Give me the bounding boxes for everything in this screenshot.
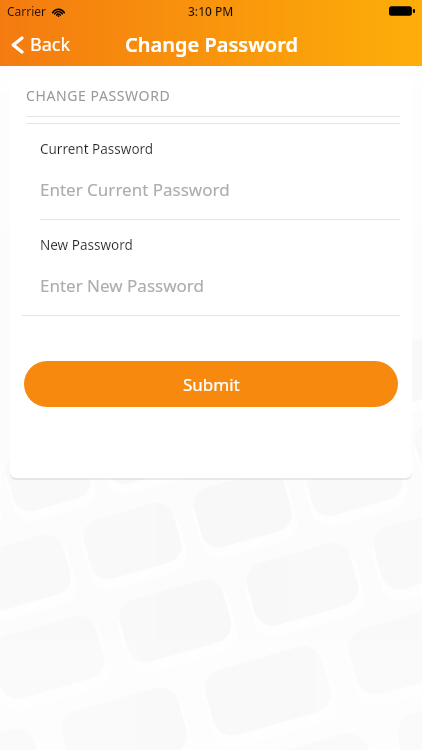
staticText: CHANGE PASSWORD — [26, 86, 171, 105]
button[interactable]: Back — [8, 28, 73, 61]
staticText: 3:10 PM — [188, 3, 234, 19]
staticText: Carrier — [7, 3, 47, 19]
staticText: Current Password — [40, 140, 154, 158]
staticText: Enter Current Password — [40, 178, 230, 201]
staticText: Back — [30, 32, 71, 57]
button[interactable]: Current Password — [10, 124, 412, 219]
staticText: Enter New Password — [40, 274, 204, 297]
button[interactable]: New Password — [10, 220, 412, 315]
staticText: Change Password — [125, 31, 298, 58]
staticText: New Password — [40, 236, 133, 254]
staticText: Submit — [183, 373, 240, 396]
button[interactable]: Submit — [24, 361, 398, 407]
